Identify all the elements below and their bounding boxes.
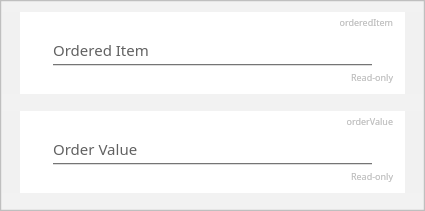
staticText: Read-only <box>20 170 393 182</box>
staticText: orderValue <box>20 115 393 127</box>
staticText: orderedItem <box>20 16 393 28</box>
staticText: Order Value <box>53 139 138 159</box>
staticText: Ordered Item <box>53 40 149 60</box>
button[interactable]: orderValue <box>2 111 423 193</box>
staticText: Read-only <box>20 71 393 83</box>
button[interactable]: orderedItem <box>2 12 423 94</box>
